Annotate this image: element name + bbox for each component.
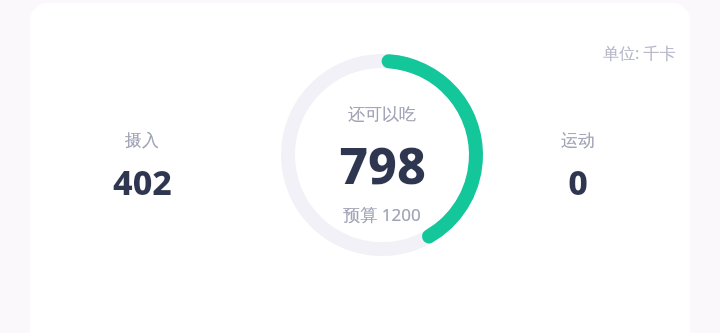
staticText: 预算 1200 <box>343 203 421 226</box>
button[interactable]: 运动 <box>508 130 648 210</box>
staticText: 运动 <box>561 130 595 151</box>
staticText: 402 <box>113 159 172 205</box>
button[interactable]: 摄入 <box>72 130 212 210</box>
staticText: 单位: 千卡 <box>603 42 676 64</box>
button[interactable] <box>30 3 690 333</box>
staticText: 还可以吃 <box>348 104 416 125</box>
staticText: 798 <box>339 131 426 199</box>
staticText: 0 <box>568 159 588 205</box>
staticText: 摄入 <box>125 130 159 151</box>
button[interactable]: 还可以吃 <box>282 104 482 234</box>
button[interactable]: 单位: 千卡 <box>556 40 676 66</box>
button[interactable]: Calorie progress ring <box>281 54 483 256</box>
